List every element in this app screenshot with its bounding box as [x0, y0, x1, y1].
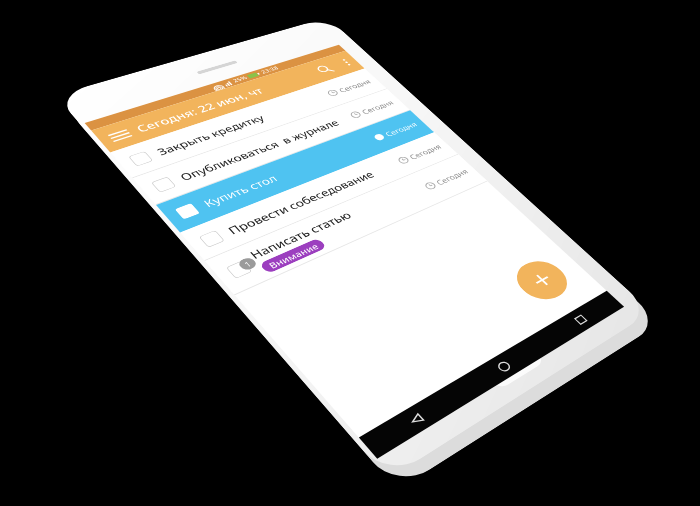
staticText: Закрыть кредитку [154, 112, 267, 157]
staticText: Провести собеседование [224, 168, 377, 237]
staticText: Купить стол [200, 172, 281, 210]
button[interactable]: Toggle task complete [199, 230, 225, 248]
staticText: Сегодня [382, 120, 420, 138]
button[interactable]: Recent apps [534, 291, 624, 351]
button[interactable]: Add task [506, 254, 577, 307]
staticText: Сегодня: 22 июн, чт [133, 85, 266, 135]
button[interactable]: Toggle task complete [205, 155, 487, 295]
button[interactable]: More options [331, 54, 361, 71]
staticText: Сегодня [359, 98, 396, 116]
button[interactable]: Toggle task complete [226, 260, 252, 279]
staticText: 25% [231, 75, 249, 84]
button[interactable]: Search [304, 57, 346, 81]
staticText: Сегодня [433, 166, 471, 187]
staticText: 1 [241, 259, 254, 269]
button[interactable]: Back [359, 382, 471, 459]
button[interactable]: Toggle task complete [151, 177, 176, 193]
staticText: 23:38 [259, 65, 281, 75]
button[interactable]: Toggle task complete [174, 203, 200, 220]
button[interactable]: Toggle task complete [110, 68, 387, 178]
staticText: Написать статью [246, 208, 354, 261]
button[interactable]: Home [452, 334, 552, 401]
button[interactable]: Toggle task complete [128, 151, 153, 166]
staticText: Внимание [266, 241, 321, 270]
button[interactable]: Toggle task complete [156, 110, 434, 232]
button[interactable]: Toggle task complete [133, 89, 410, 205]
staticText: Сегодня [406, 142, 444, 161]
staticText: Сегодня [336, 77, 373, 94]
button[interactable]: Open navigation menu [91, 119, 147, 152]
button[interactable]: Toggle task complete [180, 132, 458, 261]
staticText: Опубликоваться в журнале [176, 117, 342, 183]
